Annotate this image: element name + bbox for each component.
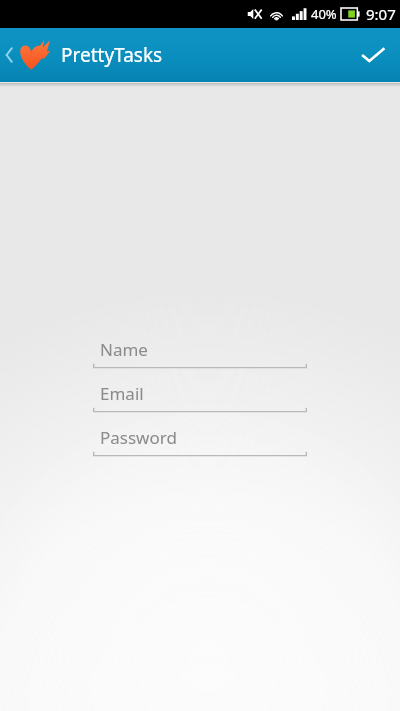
staticText: PrettyTasks [61, 42, 163, 68]
staticText: Name [100, 338, 148, 361]
button[interactable]: Done [346, 28, 400, 82]
staticText: Email [100, 382, 144, 405]
staticText: 9:07 [366, 4, 396, 24]
staticText: Password [100, 426, 177, 449]
button[interactable]: Password [93, 422, 307, 457]
button[interactable]: PrettyTasks [0, 28, 173, 82]
staticText: 40% [311, 5, 337, 23]
button[interactable]: Email [93, 378, 307, 413]
button[interactable]: Name [93, 334, 307, 369]
